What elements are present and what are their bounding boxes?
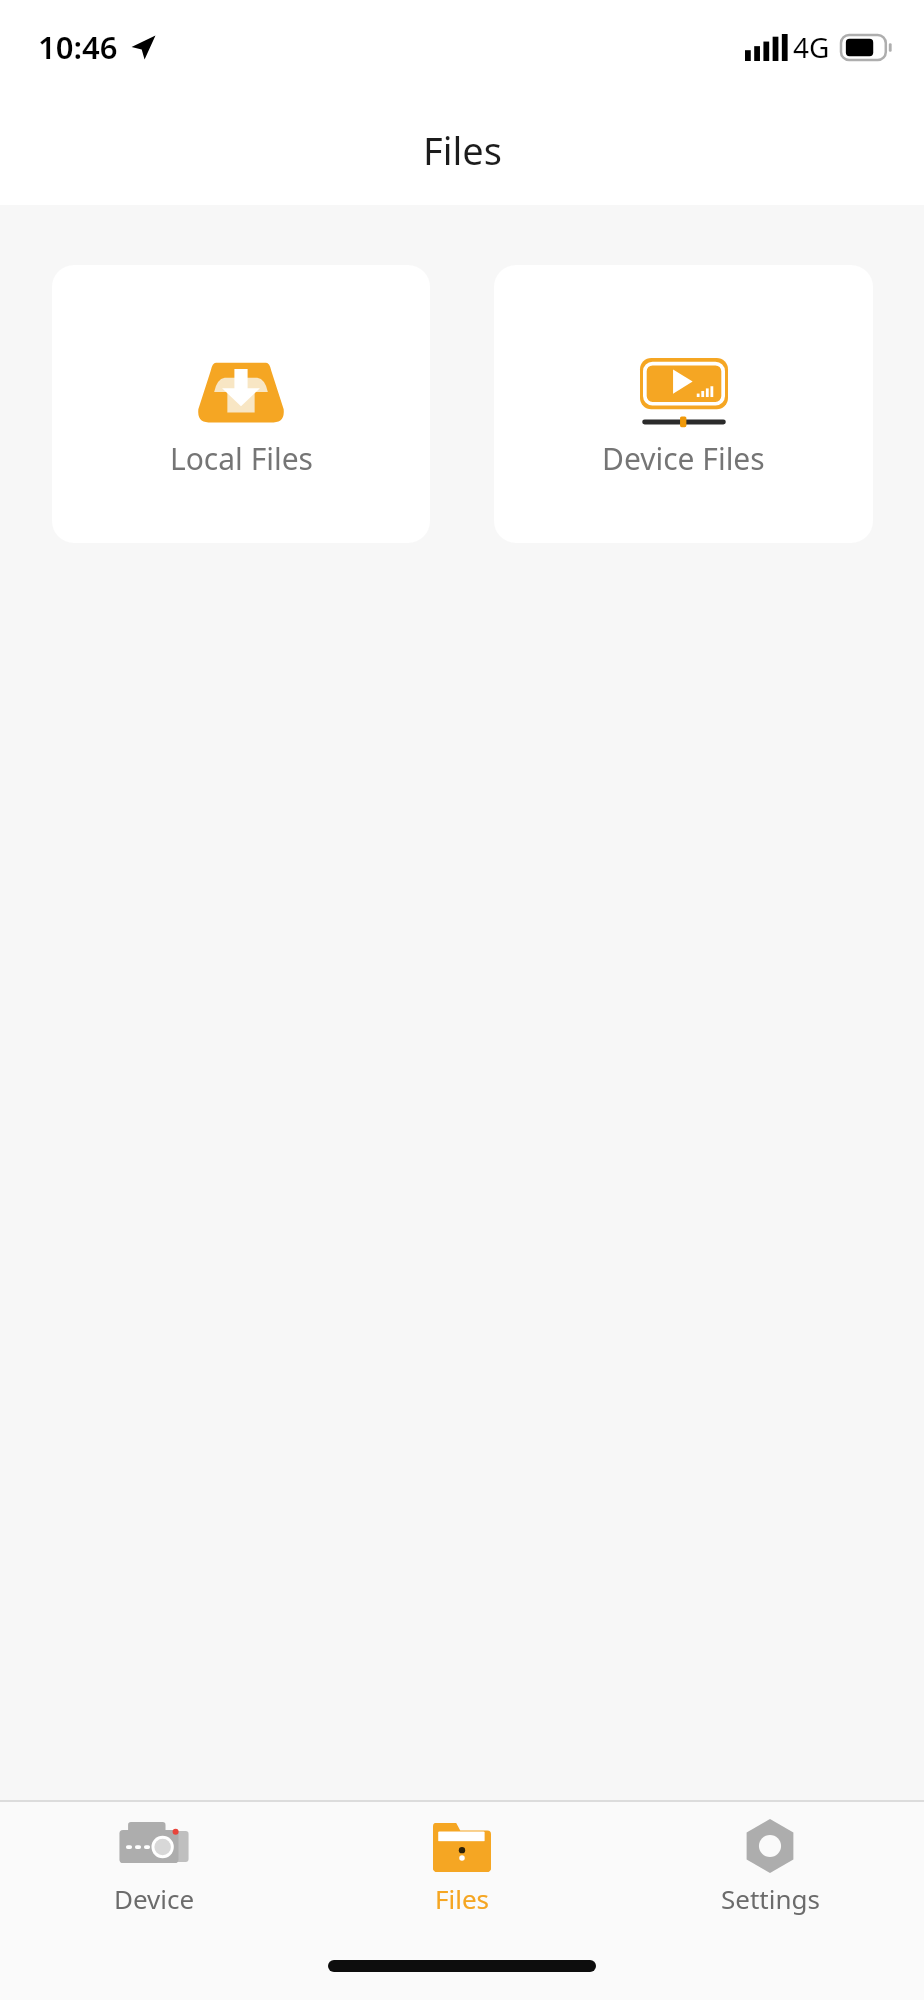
staticText: Local Files: [170, 438, 313, 479]
staticText: Files: [435, 1881, 490, 1916]
staticText: 4G: [793, 28, 830, 66]
button[interactable]: Settings: [616, 1802, 924, 1932]
staticText: Files: [423, 124, 502, 176]
staticText: Device: [114, 1881, 195, 1916]
button[interactable]: Local Files: [52, 265, 430, 543]
button[interactable]: Files: [308, 1802, 616, 1932]
staticText: 10:46: [38, 26, 118, 68]
staticText: Settings: [721, 1881, 820, 1916]
staticText: Device Files: [602, 438, 765, 479]
button[interactable]: Device Files: [494, 265, 873, 543]
button[interactable]: Device: [0, 1802, 308, 1932]
